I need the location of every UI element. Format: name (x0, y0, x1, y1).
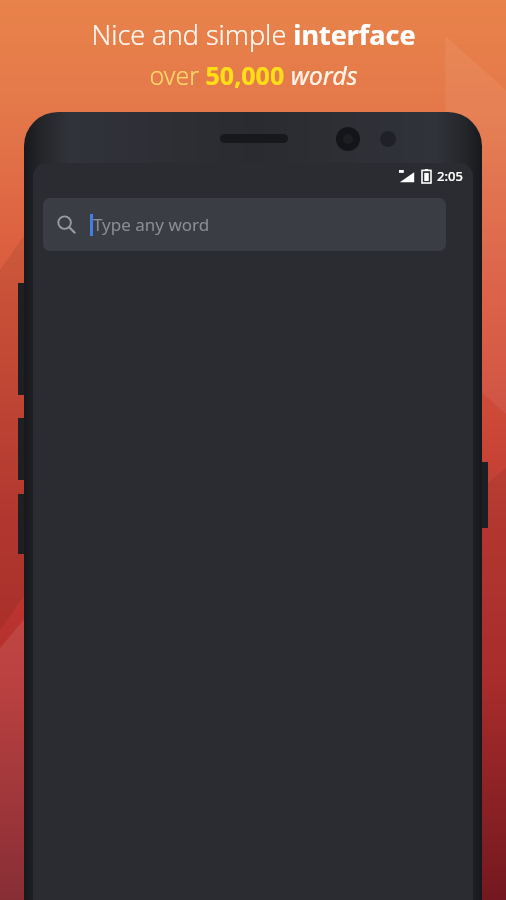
other: Search (57, 215, 76, 234)
staticText: Nice and simple interface (91, 16, 416, 53)
button[interactable]: Search (43, 198, 446, 251)
staticText: 2:05 (437, 167, 463, 185)
staticText: Type any word (93, 213, 210, 236)
staticText: over 50,000 words (149, 58, 358, 92)
